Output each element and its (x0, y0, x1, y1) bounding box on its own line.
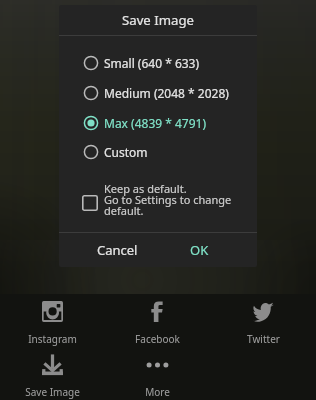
staticText: Custom (104, 144, 148, 160)
button[interactable]: Small (640 * 633) (59, 48, 257, 78)
button[interactable]: More (105, 347, 210, 400)
staticText: Small (640 * 633) (104, 55, 200, 71)
button[interactable]: Medium (2048 * 2028) (59, 78, 257, 108)
staticText: Max (4839 * 4791) (104, 115, 207, 131)
staticText: Facebook (135, 332, 180, 346)
staticText: OK (190, 241, 209, 259)
button[interactable]: Share to Twitter (211, 294, 316, 347)
button[interactable]: Save Image (0, 347, 105, 400)
staticText: Save Image (122, 11, 194, 29)
button[interactable]: Keep as default. Go to Settings to chang… (59, 181, 257, 223)
staticText: Cancel (97, 241, 138, 259)
staticText: Save Image (25, 385, 80, 399)
staticText: Medium (2048 * 2028) (104, 85, 229, 101)
staticText: Instagram (28, 332, 77, 346)
button[interactable]: Share to Facebook (105, 294, 210, 347)
button[interactable]: OK (175, 233, 223, 267)
button[interactable]: Share to Instagram (0, 294, 105, 347)
button[interactable]: Max (4839 * 4791) (59, 108, 257, 138)
staticText: More (145, 385, 170, 399)
button[interactable]: Custom (59, 137, 257, 167)
staticText: Keep as default. Go to Settings to chang… (104, 181, 232, 218)
staticText: Twitter (247, 332, 280, 346)
button[interactable]: Cancel (87, 233, 147, 267)
